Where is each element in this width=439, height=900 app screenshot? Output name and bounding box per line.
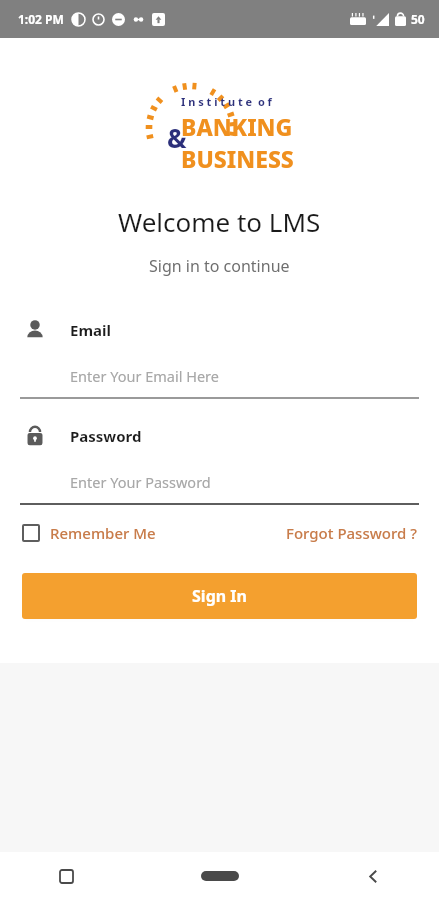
staticText: & (167, 120, 187, 155)
button[interactable]: Enter Your Email Here (20, 361, 419, 391)
staticText: Forgot Password ? (286, 523, 417, 543)
button[interactable]: Sign In (22, 573, 417, 619)
staticText: Welcome to LMS (118, 204, 321, 239)
staticText: Sign in to continue (149, 255, 290, 277)
staticText: Password (70, 426, 142, 446)
staticText: I n s t i t u t e o f (181, 94, 272, 109)
staticText: Remember Me (50, 523, 156, 543)
other: Password (20, 421, 50, 451)
button[interactable]: Forgot Password ? (286, 523, 417, 543)
button[interactable]: Back (353, 856, 393, 896)
staticText: BANKING (181, 111, 293, 142)
button[interactable]: Enter Your Password (20, 467, 419, 497)
staticText: Enter Your Password (70, 472, 211, 492)
staticText: Sign In (192, 585, 247, 607)
staticText: Enter Your Email Here (70, 366, 219, 386)
staticText: 50 (411, 11, 425, 27)
staticText: Email (70, 320, 111, 340)
button[interactable]: Home (200, 856, 240, 896)
button[interactable]: Remember Me (22, 523, 156, 543)
button[interactable]: Recent apps (46, 856, 86, 896)
staticText: BUSINESS (181, 143, 294, 174)
other: Email (20, 315, 50, 345)
staticText: 1:02 PM (18, 11, 64, 27)
